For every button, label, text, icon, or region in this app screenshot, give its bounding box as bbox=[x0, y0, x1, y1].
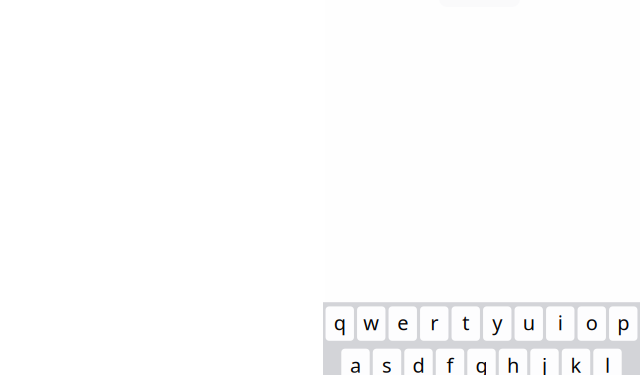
button[interactable]: s bbox=[373, 349, 401, 375]
button[interactable]: t bbox=[452, 306, 480, 341]
button[interactable]: u bbox=[514, 306, 543, 341]
button[interactable]: p bbox=[609, 306, 637, 341]
staticText: w bbox=[363, 309, 379, 336]
button[interactable]: i bbox=[546, 306, 574, 341]
staticText: e bbox=[397, 309, 408, 336]
staticText: l bbox=[605, 352, 610, 375]
staticText: h bbox=[507, 352, 519, 375]
button[interactable]: w bbox=[357, 306, 385, 341]
staticText: q bbox=[334, 309, 346, 336]
staticText: p bbox=[617, 309, 629, 336]
button[interactable]: d bbox=[404, 349, 433, 375]
staticText: j bbox=[542, 352, 547, 375]
staticText: a bbox=[350, 352, 361, 375]
staticText: r bbox=[430, 309, 438, 336]
staticText: y bbox=[492, 309, 502, 336]
button[interactable]: f bbox=[436, 349, 464, 375]
button[interactable]: q bbox=[326, 306, 354, 341]
button[interactable]: l bbox=[593, 349, 622, 375]
staticText: s bbox=[382, 352, 392, 375]
staticText: d bbox=[412, 352, 424, 375]
button[interactable]: o bbox=[577, 306, 606, 341]
staticText: u bbox=[523, 309, 535, 336]
button[interactable]: r bbox=[420, 306, 448, 341]
button[interactable]: a bbox=[341, 349, 370, 375]
button[interactable]: y bbox=[483, 306, 511, 341]
staticText: i bbox=[558, 309, 563, 336]
staticText: t bbox=[462, 309, 469, 336]
button[interactable]: e bbox=[389, 306, 417, 341]
staticText: o bbox=[586, 309, 598, 336]
button[interactable]: k bbox=[562, 349, 590, 375]
staticText: g bbox=[475, 352, 487, 375]
staticText: f bbox=[446, 352, 453, 375]
button[interactable]: g bbox=[467, 349, 496, 375]
staticText: k bbox=[570, 352, 581, 375]
button[interactable]: j bbox=[530, 349, 559, 375]
button[interactable]: h bbox=[499, 349, 527, 375]
